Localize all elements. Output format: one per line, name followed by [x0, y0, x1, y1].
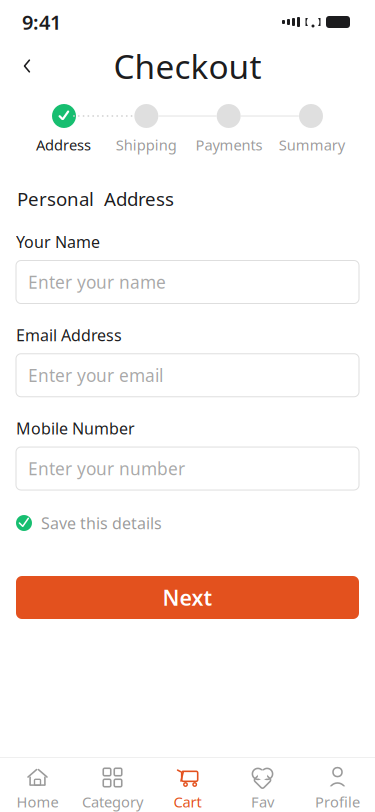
staticText: Shipping: [116, 135, 177, 154]
staticText: 9:41: [22, 9, 61, 35]
staticText: Payments: [195, 135, 262, 154]
staticText: Checkout: [113, 44, 261, 88]
staticText: Your Name: [16, 231, 100, 252]
staticText: Personal Address: [17, 186, 174, 211]
staticText: Address: [36, 135, 91, 154]
staticText: Save this details: [41, 512, 162, 534]
staticText: Home: [16, 792, 58, 811]
button[interactable]: Enter your email: [16, 354, 359, 397]
staticText: Email Address: [16, 324, 122, 346]
staticText: Enter your email: [28, 364, 163, 387]
staticText: Profile: [315, 792, 360, 811]
button[interactable]: Enter your name: [16, 260, 359, 303]
button[interactable]: Category: [75, 767, 150, 811]
staticText: Enter your name: [28, 270, 166, 293]
button[interactable]: Home: [0, 767, 75, 811]
button[interactable]: Save this details: [0, 508, 375, 538]
staticText: Category: [82, 792, 143, 811]
button[interactable]: Profile: [300, 767, 375, 811]
button[interactable]: Fav: [225, 767, 300, 811]
staticText: Summary: [279, 135, 345, 154]
staticText: Mobile Number: [16, 418, 135, 439]
button[interactable]: Back: [10, 49, 44, 83]
button[interactable]: Cart: [150, 767, 225, 811]
button[interactable]: Enter your number: [16, 447, 359, 490]
staticText: Fav: [251, 792, 274, 811]
button[interactable]: Next: [16, 576, 359, 619]
staticText: Next: [162, 583, 212, 612]
staticText: Enter your number: [28, 457, 185, 480]
staticText: Cart: [173, 792, 201, 811]
